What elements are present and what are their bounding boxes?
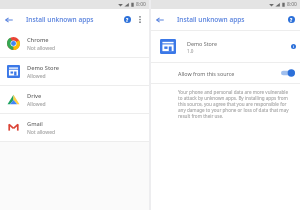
button[interactable]: Demo Store [151,31,300,62]
staticText: Chrome [27,36,49,44]
button[interactable]: Gmail [0,114,149,141]
staticText: ? [126,17,129,23]
staticText: ? [290,17,293,23]
button[interactable]: Help [284,9,298,30]
button[interactable]: Allow from this source [151,63,300,83]
button[interactable]: Demo Store [0,58,149,85]
staticText: Demo Store [187,40,218,47]
staticText: Gmail [27,120,43,128]
staticText: Drive [27,92,42,100]
staticText: 8:00 [287,1,297,8]
staticText: Not allowed [27,45,56,52]
staticText: Allowed [27,101,46,108]
staticText: 1.0 [187,48,194,54]
button[interactable]: Chrome [0,30,149,57]
button[interactable]: Help [120,9,134,30]
staticText: Your phone and personal data are more vu… [178,89,291,119]
staticText: 8:00 [136,1,146,8]
staticText: Allow from this source [178,70,235,77]
staticText: Not allowed [27,129,56,136]
button[interactable]: Drive [0,86,149,113]
button[interactable]: Back [0,9,18,30]
button[interactable]: Back [151,9,169,30]
staticText: Demo Store [27,64,60,72]
button[interactable]: App info [286,31,300,62]
staticText: Install unknown apps [26,15,94,24]
button[interactable]: More options [134,9,145,30]
staticText: Allowed [27,73,46,80]
staticText: Install unknown apps [177,15,245,24]
